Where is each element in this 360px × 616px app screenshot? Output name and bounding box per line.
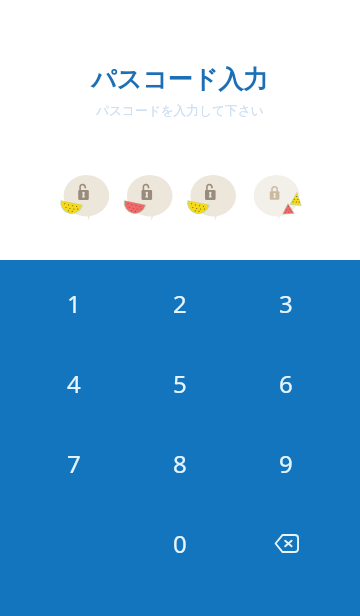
button[interactable]: 9 bbox=[233, 423, 339, 503]
button[interactable]: 5 bbox=[127, 343, 233, 423]
staticText: 8 bbox=[173, 447, 187, 480]
button[interactable]: 7 bbox=[21, 423, 127, 503]
button[interactable]: 6 bbox=[233, 343, 339, 423]
staticText: 6 bbox=[279, 367, 293, 400]
button[interactable]: 3 bbox=[233, 263, 339, 343]
staticText: パスコードを入力して下さい bbox=[96, 103, 264, 119]
staticText: 7 bbox=[67, 447, 81, 480]
button[interactable]: 0 bbox=[127, 503, 233, 583]
staticText: 4 bbox=[67, 367, 81, 400]
staticText: 5 bbox=[173, 367, 187, 400]
staticText: 2 bbox=[173, 287, 187, 320]
staticText: パスコード入力 bbox=[91, 64, 269, 95]
staticText: 1 bbox=[67, 287, 81, 320]
other: Backspace bbox=[274, 534, 299, 553]
button[interactable]: 1 bbox=[21, 263, 127, 343]
button[interactable]: 4 bbox=[21, 343, 127, 423]
staticText: 9 bbox=[279, 447, 293, 480]
button[interactable]: 8 bbox=[127, 423, 233, 503]
staticText: 0 bbox=[173, 527, 187, 560]
button[interactable]: Backspace bbox=[233, 503, 339, 583]
button[interactable]: 2 bbox=[127, 263, 233, 343]
staticText: 3 bbox=[279, 287, 293, 320]
